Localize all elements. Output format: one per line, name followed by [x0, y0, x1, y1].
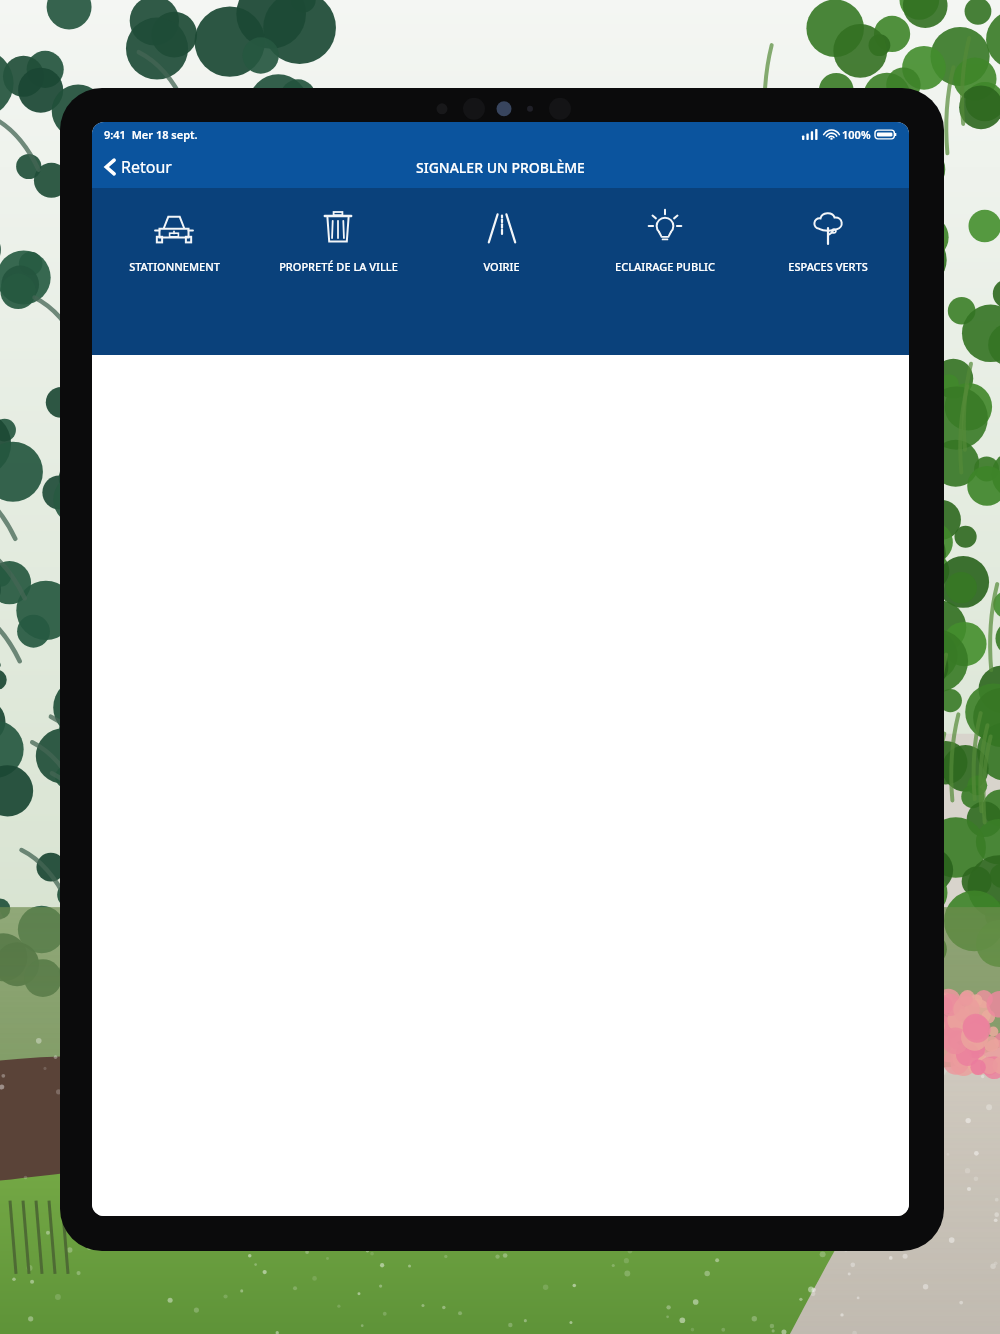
staticText: ESPACES VERTS [788, 259, 868, 274]
staticText: Retour [121, 156, 172, 178]
staticText: VOIRIE [483, 259, 520, 274]
staticText: STATIONNEMENT [129, 259, 220, 274]
button[interactable]: STATIONNEMENT [92, 202, 256, 280]
staticText: SIGNALER UN PROBLÈME [416, 158, 585, 177]
staticText: 100% [842, 127, 871, 142]
button[interactable]: ESPACES VERTS [746, 202, 909, 280]
button[interactable]: ECLAIRAGE PUBLIC [583, 202, 746, 280]
staticText: ECLAIRAGE PUBLIC [615, 259, 715, 274]
button[interactable]: PROPRETÉ DE LA VILLE [256, 202, 420, 280]
staticText: 9:41 Mer 18 sept. [104, 127, 198, 142]
staticText: PROPRETÉ DE LA VILLE [279, 259, 398, 274]
button[interactable]: VOIRIE [420, 202, 583, 280]
button[interactable]: Retour [98, 152, 178, 182]
